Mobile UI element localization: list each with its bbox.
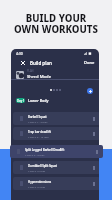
staticText: 3 sets x 6 - 8 reps — [25, 153, 45, 156]
staticText: Dumbbell Split Squat — [28, 164, 57, 168]
staticText: PLAN — [27, 69, 34, 73]
staticText: Build plan — [30, 60, 52, 66]
other: Reorder — [95, 148, 99, 156]
button[interactable]: Split Legged Barbell Deadlift — [10, 145, 103, 158]
staticText: 3 sets x 8 - 10 reps — [28, 135, 49, 138]
other: Reorder — [92, 130, 96, 138]
button[interactable]: Add exercise — [87, 88, 93, 94]
button[interactable]: Close — [19, 57, 27, 68]
button[interactable]: Barbell Squat — [13, 112, 99, 125]
other: Reorder — [92, 164, 96, 172]
staticText: 4 sets x 7 - 9 reps — [28, 120, 48, 123]
button[interactable]: Hyperextensions — [13, 177, 99, 190]
staticText: Split Legged Barbell Deadlift — [25, 148, 65, 152]
staticText: 4 sets x 10 reps — [28, 169, 46, 172]
other: Reorder — [92, 115, 96, 123]
staticText: Barbell Squat — [28, 115, 47, 119]
staticText: Hyperextensions — [28, 180, 52, 184]
staticText: Day 1 — [17, 99, 25, 103]
staticText: Lower Body — [28, 98, 49, 103]
staticText: Shred Mode — [27, 74, 52, 80]
button[interactable]: Dumbbell Split Squat — [13, 161, 99, 174]
staticText: BUILD YOUR OWN WORKOUTS — [0, 12, 112, 36]
button[interactable]: Trap bar deadlift — [13, 127, 99, 140]
button[interactable]: PLAN — [11, 69, 99, 80]
staticText: Done — [84, 60, 95, 65]
staticText: 4:30 — [16, 51, 23, 56]
staticText: Trap bar deadlift — [28, 130, 51, 134]
other: Reorder — [92, 180, 96, 188]
button[interactable]: Done — [80, 58, 99, 67]
staticText: 3 sets x 15 reps — [28, 185, 46, 188]
